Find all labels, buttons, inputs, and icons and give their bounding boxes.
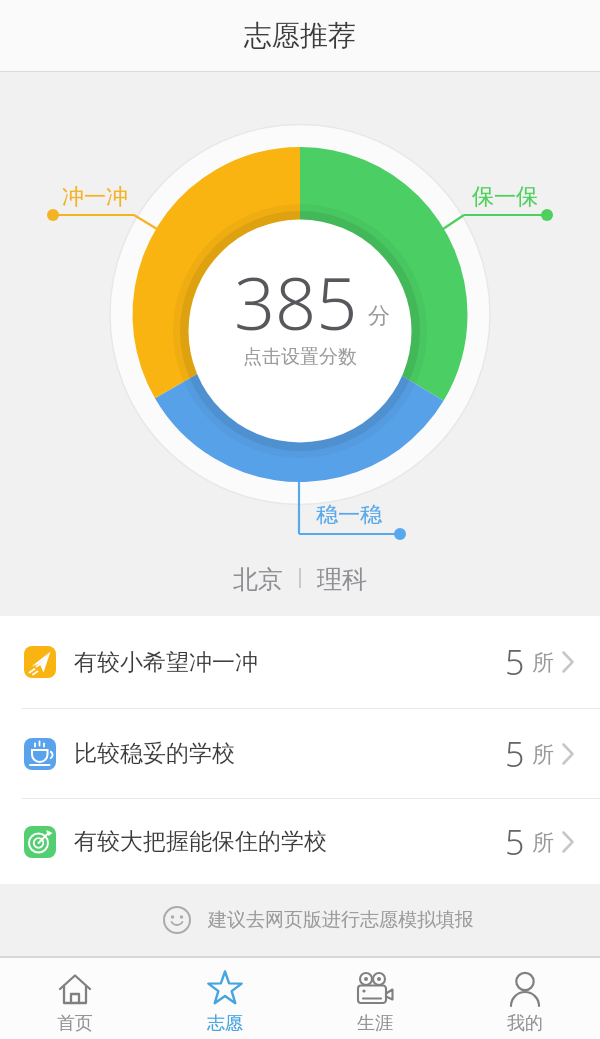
button[interactable]: 有较小希望冲一冲	[0, 616, 600, 708]
button[interactable]: 建议去网页版进行志愿模拟填报	[0, 884, 600, 956]
button[interactable]: 首页	[0, 958, 150, 1039]
staticText: 建议去网页版进行志愿模拟填报	[208, 908, 474, 932]
staticText: 志愿	[207, 1012, 243, 1035]
staticText: 首页	[57, 1012, 93, 1035]
button[interactable]: 北京	[0, 564, 600, 592]
staticText: 志愿推荐	[244, 18, 356, 53]
staticText: 有较小希望冲一冲	[74, 648, 258, 677]
button[interactable]: 志愿	[150, 958, 300, 1039]
staticText: 北京	[233, 564, 283, 592]
staticText: 比较稳妥的学校	[74, 739, 235, 768]
staticText: 稳一稳	[316, 501, 382, 529]
staticText: 385	[234, 253, 358, 343]
staticText: 5	[505, 731, 525, 777]
button[interactable]: 我的	[450, 958, 600, 1039]
staticText: 理科	[317, 564, 367, 592]
staticText: 所	[532, 741, 554, 769]
button[interactable]: 冲一冲	[0, 72, 600, 616]
staticText: 有较大把握能保住的学校	[74, 827, 327, 856]
staticText: 分	[368, 302, 390, 330]
staticText: 所	[532, 829, 554, 857]
staticText: 我的	[507, 1012, 543, 1035]
staticText: 冲一冲	[62, 183, 128, 211]
staticText: 5	[505, 639, 525, 685]
staticText: 保一保	[472, 183, 538, 211]
button[interactable]: 比较稳妥的学校	[0, 709, 600, 798]
button[interactable]: 生涯	[300, 958, 450, 1039]
staticText: 5	[505, 819, 525, 865]
staticText: 生涯	[357, 1012, 393, 1035]
staticText: 点击设置分数	[243, 345, 357, 369]
button[interactable]: 有较大把握能保住的学校	[0, 799, 600, 884]
staticText: 所	[532, 649, 554, 677]
